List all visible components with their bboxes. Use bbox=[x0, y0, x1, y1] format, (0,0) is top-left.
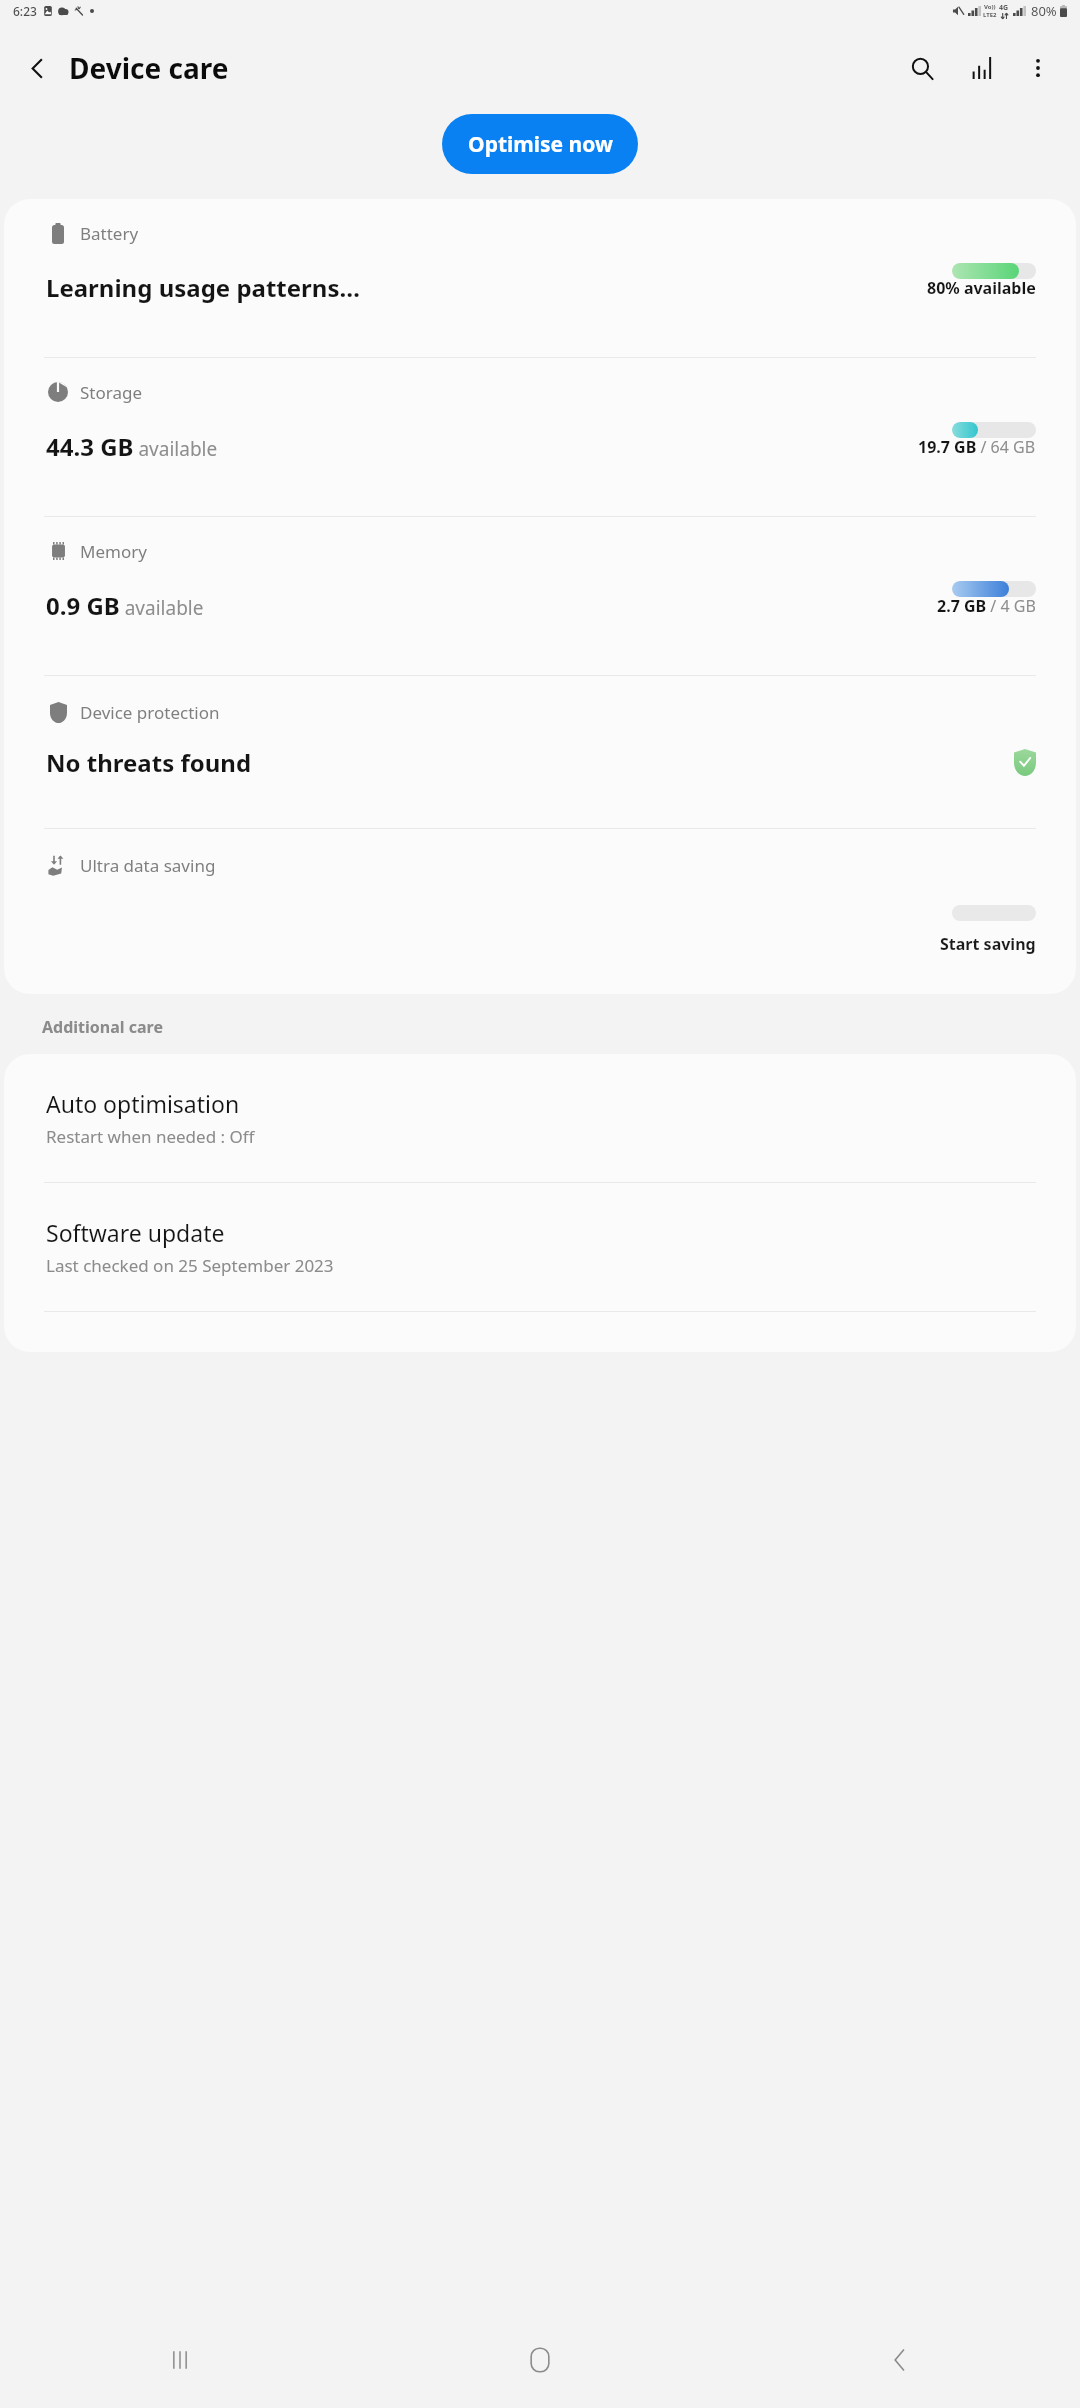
staticText: 80% bbox=[1031, 2, 1057, 20]
button[interactable]: Back bbox=[12, 42, 64, 94]
button[interactable]: Home bbox=[360, 2312, 720, 2408]
staticText: Storage bbox=[80, 381, 143, 404]
staticText: Device care bbox=[69, 49, 229, 87]
staticText: Restart when needed : Off bbox=[46, 1125, 255, 1148]
staticText: 0.9 GB available bbox=[46, 589, 204, 622]
button[interactable]: Optimise now bbox=[442, 114, 638, 174]
button[interactable]: Software update bbox=[4, 1183, 1076, 1311]
staticText: Last checked on 25 September 2023 bbox=[46, 1254, 334, 1277]
button[interactable]: Storage bbox=[4, 358, 1076, 516]
staticText: 6:23 bbox=[13, 3, 37, 19]
staticText: Vo)) bbox=[984, 3, 996, 11]
staticText: Software update bbox=[46, 1217, 225, 1248]
button[interactable]: Device protection bbox=[4, 676, 1076, 828]
button[interactable]: Recents bbox=[0, 2312, 360, 2408]
button[interactable]: Back bbox=[720, 2312, 1080, 2408]
button[interactable]: More options bbox=[1012, 42, 1064, 94]
staticText: Device protection bbox=[80, 701, 220, 724]
staticText: 19.7 GB / 64 GB bbox=[918, 436, 1036, 458]
staticText: 80% available bbox=[927, 277, 1036, 299]
staticText: Memory bbox=[80, 540, 147, 563]
button[interactable]: Battery bbox=[4, 199, 1076, 357]
staticText: 4G bbox=[999, 3, 1009, 13]
button[interactable]: Ultra data saving bbox=[4, 829, 1076, 994]
staticText: Optimise now bbox=[468, 130, 613, 159]
staticText: 2.7 GB / 4 GB bbox=[937, 595, 1036, 617]
staticText: Battery bbox=[80, 222, 139, 245]
staticText: 44.3 GB available bbox=[46, 430, 218, 463]
button[interactable]: Memory bbox=[4, 517, 1076, 675]
staticText: Start saving bbox=[940, 933, 1036, 955]
staticText: No threats found bbox=[46, 746, 252, 779]
staticText: LTE2 bbox=[983, 11, 997, 19]
button[interactable]: Search bbox=[896, 42, 948, 94]
button[interactable]: Usage statistics bbox=[956, 42, 1008, 94]
staticText: Ultra data saving bbox=[80, 854, 216, 877]
staticText: Learning usage patterns… bbox=[46, 271, 360, 304]
staticText: Auto optimisation bbox=[46, 1088, 240, 1119]
staticText: Additional care bbox=[42, 1016, 163, 1038]
button[interactable]: Auto optimisation bbox=[4, 1054, 1076, 1182]
